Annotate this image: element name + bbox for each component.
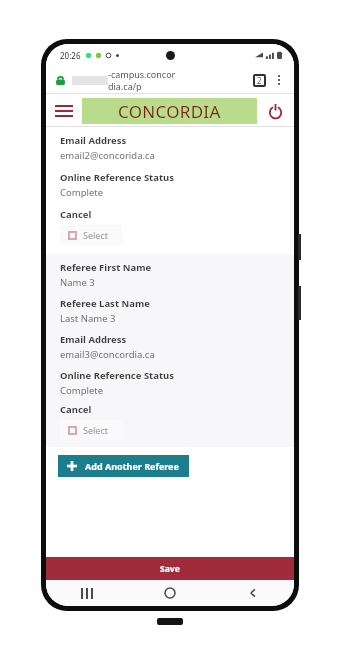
staticText: Select — [83, 229, 108, 241]
staticText: Save — [160, 563, 180, 575]
staticText: Name 3 — [60, 276, 95, 289]
staticText: Cancel — [60, 403, 92, 416]
staticText: Select — [83, 424, 108, 436]
staticText: email3@concordia.ca — [60, 348, 155, 361]
button[interactable]: Home — [128, 580, 211, 606]
button[interactable]: Tabs — [253, 74, 266, 87]
staticText: Last Name 3 — [60, 312, 116, 325]
button[interactable]: Back — [211, 580, 294, 606]
button[interactable]: Log out — [265, 101, 285, 121]
staticText: 2 — [257, 75, 262, 86]
button[interactable]: More options — [273, 72, 285, 88]
button[interactable]: Select — [60, 420, 122, 440]
button[interactable]: Recent apps — [46, 580, 128, 606]
staticText: Referee First Name — [60, 261, 152, 274]
button[interactable]: Add Another Referee — [58, 455, 189, 477]
button[interactable]: Select — [60, 225, 122, 245]
staticText: Online Reference Status — [60, 171, 174, 184]
staticText: Cancel — [60, 208, 92, 221]
staticText: Complete — [60, 186, 104, 199]
staticText: Email Address — [60, 333, 127, 346]
staticText: Referee Last Name — [60, 297, 150, 310]
button[interactable]: Menu — [55, 101, 73, 121]
staticText: Complete — [60, 384, 104, 397]
staticText: 20:26 — [60, 50, 81, 61]
staticText: Add Another Referee — [85, 460, 179, 472]
button[interactable]: Save — [46, 557, 294, 580]
staticText: email2@concorida.ca — [60, 149, 155, 162]
button[interactable]: CONCORDIA — [82, 98, 257, 124]
staticText: Email Address — [60, 134, 127, 147]
staticText: CONCORDIA — [118, 100, 221, 123]
staticText: Online Reference Status — [60, 369, 174, 382]
staticText: -campus.concordia.ca/p — [108, 68, 180, 92]
